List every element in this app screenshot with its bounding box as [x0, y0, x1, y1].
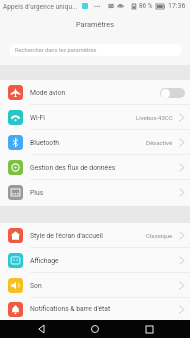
button[interactable]: Plus	[0, 180, 190, 205]
staticText: Désactivé	[146, 139, 173, 146]
staticText: Notifications & barre d'état	[30, 305, 111, 313]
button[interactable]: Son	[0, 273, 190, 298]
button[interactable]: Affichage	[0, 248, 190, 273]
staticText: Rechercher dans les paramètres	[15, 47, 97, 54]
button[interactable]: Back	[30, 320, 54, 338]
button[interactable]: Style de l'écran d'accueil	[0, 223, 190, 248]
staticText: Wi-Fi	[30, 114, 45, 122]
staticText: Affichage	[30, 257, 59, 265]
button[interactable]: Mode avion	[160, 88, 185, 98]
button[interactable]: Home	[83, 320, 107, 338]
staticText: Mode avion	[30, 89, 66, 97]
staticText: Paramètres	[76, 20, 115, 29]
button[interactable]: Gestion des flux de données	[0, 155, 190, 180]
staticText: Style de l'écran d'accueil	[30, 232, 103, 240]
staticText: Classique	[146, 232, 173, 239]
staticText: Son	[30, 282, 42, 290]
staticText: Bluetooth	[30, 139, 60, 147]
staticText: Plus	[30, 189, 44, 197]
button[interactable]: Notifications & barre d'état	[0, 298, 190, 320]
button[interactable]: Mode avion	[0, 80, 190, 105]
button[interactable]: Bluetooth	[0, 130, 190, 155]
button[interactable]: Recents	[137, 320, 161, 338]
staticText: Appels d'urgence uniqu...	[3, 3, 78, 10]
button[interactable]: Rechercher dans les paramètres	[9, 44, 182, 56]
staticText: Gestion des flux de données	[30, 164, 116, 172]
button[interactable]: Wi-Fi	[0, 105, 190, 130]
staticText: 17:36	[168, 2, 186, 10]
staticText: Livebox-43CC	[136, 114, 173, 121]
staticText: 86 %	[139, 2, 153, 10]
